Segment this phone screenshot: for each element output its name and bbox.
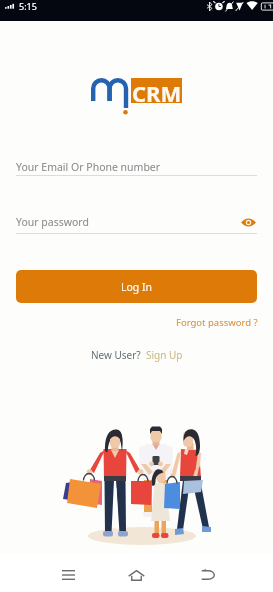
staticText: Log In — [121, 280, 153, 294]
button[interactable]: Sign Up — [146, 348, 183, 362]
staticText: CRM — [132, 78, 182, 103]
button[interactable]: Home — [118, 556, 154, 592]
button[interactable]: Recent apps — [50, 556, 86, 592]
staticText: New User? — [91, 348, 141, 362]
staticText: 5:15 — [19, 0, 37, 12]
staticText: Your Email Or Phone number — [16, 160, 161, 174]
button[interactable]: Back — [190, 556, 226, 592]
staticText: Your password — [16, 215, 89, 229]
button[interactable]: Forgot password ? — [174, 314, 260, 331]
button[interactable]: Show password — [239, 213, 257, 231]
button[interactable]: Log In — [16, 270, 257, 303]
